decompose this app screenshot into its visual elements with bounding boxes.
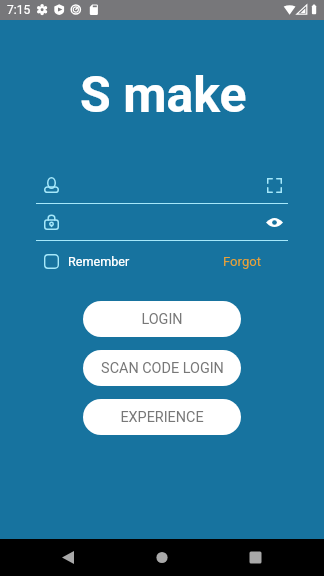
staticText: Forgot: [223, 254, 261, 269]
staticText: SCAN CODE LOGIN: [101, 360, 224, 377]
button[interactable]: EXPERIENCE: [83, 399, 241, 435]
button[interactable]: Remember: [44, 253, 130, 269]
staticText: LOGIN: [141, 311, 183, 328]
button[interactable]: Show password: [263, 211, 286, 234]
button[interactable]: Recent apps: [238, 540, 274, 576]
button[interactable]: Forgot: [216, 251, 268, 271]
staticText: EXPERIENCE: [120, 409, 204, 426]
staticText: 7:15: [7, 3, 31, 17]
button[interactable]: Home: [144, 540, 180, 576]
button[interactable]: Scan QR code: [263, 174, 286, 197]
button[interactable]: LOGIN: [83, 301, 241, 337]
button[interactable]: Back: [50, 540, 86, 576]
button[interactable]: SCAN CODE LOGIN: [83, 350, 241, 386]
staticText: S make: [80, 66, 247, 120]
staticText: Remember: [68, 254, 130, 269]
